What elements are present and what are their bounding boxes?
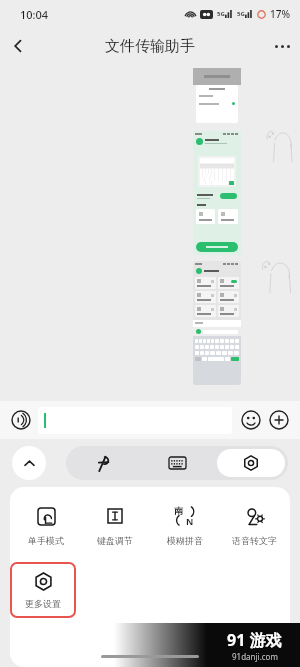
- staticText: 5G: [217, 10, 225, 18]
- button[interactable]: More options: [264, 28, 300, 64]
- staticText: N: [186, 515, 194, 527]
- button[interactable]: 南: [152, 503, 218, 548]
- staticText: 5G: [237, 10, 245, 18]
- staticText: 文件传输助手: [105, 37, 195, 56]
- staticText: 17%: [270, 7, 290, 21]
- button[interactable]: [38, 407, 232, 434]
- button[interactable]: Keyboard: [140, 446, 214, 480]
- button[interactable]: 键盘调节: [82, 503, 148, 548]
- button[interactable]: Settings: [217, 449, 285, 477]
- staticText: 单手模式: [28, 535, 64, 546]
- button[interactable]: Back: [0, 28, 36, 64]
- staticText: 91danji.com: [232, 651, 278, 662]
- button[interactable]: Voice input: [8, 407, 34, 433]
- button[interactable]: Handwriting: [66, 446, 140, 480]
- staticText: 10:04: [20, 7, 49, 22]
- button[interactable]: 更多设置: [10, 562, 76, 618]
- button[interactable]: Emoji: [238, 407, 264, 433]
- button[interactable]: Collapse: [12, 446, 46, 480]
- staticText: 更多设置: [25, 598, 61, 609]
- staticText: 91 游戏: [227, 629, 282, 651]
- button[interactable]: More functions: [266, 407, 292, 433]
- staticText: 南: [174, 505, 183, 516]
- button[interactable]: 单手模式: [13, 503, 79, 548]
- button[interactable]: 语音转文字: [221, 503, 287, 548]
- staticText: 模糊拼音: [167, 535, 203, 546]
- staticText: 语音转文字: [232, 535, 277, 546]
- staticText: 键盘调节: [97, 535, 133, 546]
